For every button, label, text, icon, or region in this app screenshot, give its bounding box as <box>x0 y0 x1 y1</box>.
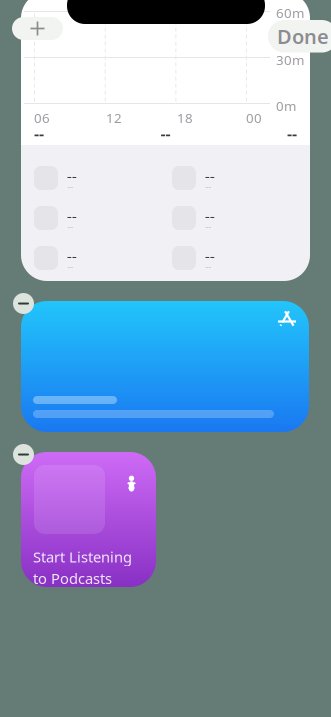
staticText: 60m <box>276 4 304 22</box>
staticText: -- <box>205 206 215 225</box>
staticText: -- <box>205 179 211 193</box>
staticText: Done <box>277 23 329 50</box>
staticText: 0m <box>276 97 296 115</box>
button[interactable]: Remove widget <box>13 444 34 465</box>
staticText: -- <box>205 246 215 265</box>
staticText: -- <box>67 206 77 225</box>
staticText: -- <box>67 259 73 273</box>
staticText: 18 <box>177 109 193 127</box>
staticText: -- <box>287 123 297 145</box>
staticText: -- <box>205 219 211 233</box>
button[interactable]: Done <box>268 20 331 53</box>
staticText: -- <box>67 246 77 265</box>
staticText: -- <box>205 259 211 273</box>
staticText: 12 <box>106 109 122 127</box>
staticText: -- <box>160 123 170 145</box>
button[interactable]: Remove widget <box>13 293 34 314</box>
staticText: -- <box>67 219 73 233</box>
staticText: 06 <box>34 109 50 127</box>
button[interactable]: Add widget <box>12 17 63 40</box>
staticText: to Podcasts <box>33 568 112 588</box>
staticText: -- <box>34 123 44 145</box>
staticText: -- <box>67 166 77 185</box>
staticText: 00 <box>246 109 262 127</box>
staticText: -- <box>67 179 73 193</box>
staticText: -- <box>205 166 215 185</box>
staticText: 30m <box>276 51 304 69</box>
staticText: Start Listening <box>33 547 132 566</box>
